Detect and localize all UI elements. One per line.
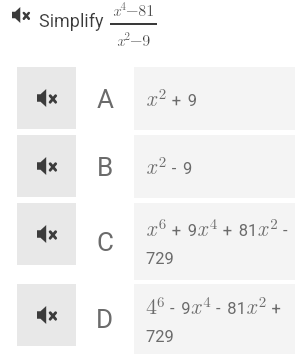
staticText: x4−81 xyxy=(113,0,155,21)
button[interactable]: Play audio xyxy=(17,135,76,197)
staticText: C xyxy=(97,227,114,257)
staticText: x2 + 9 xyxy=(146,81,198,112)
staticText: x2−9 xyxy=(117,28,151,51)
staticText: 46 - 9x4 - 81x2 + 729 xyxy=(146,289,293,346)
button[interactable]: Play audio xyxy=(0,135,295,198)
staticText: x2 - 9 xyxy=(146,149,193,180)
staticText: x6 + 9x4 + 81x2 - 729 xyxy=(146,211,293,268)
button[interactable]: Play audio xyxy=(0,284,295,354)
button[interactable]: Play audio xyxy=(17,67,76,129)
staticText: D xyxy=(96,304,114,334)
button[interactable]: Play audio xyxy=(17,284,76,346)
staticText: B xyxy=(97,152,114,182)
staticText: A xyxy=(97,84,114,114)
button[interactable]: Play audio xyxy=(17,203,76,265)
button[interactable]: Play audio xyxy=(12,7,30,23)
staticText: Simplify xyxy=(39,10,104,31)
button[interactable]: Play audio xyxy=(0,203,295,280)
button[interactable]: Play audio xyxy=(0,67,295,130)
